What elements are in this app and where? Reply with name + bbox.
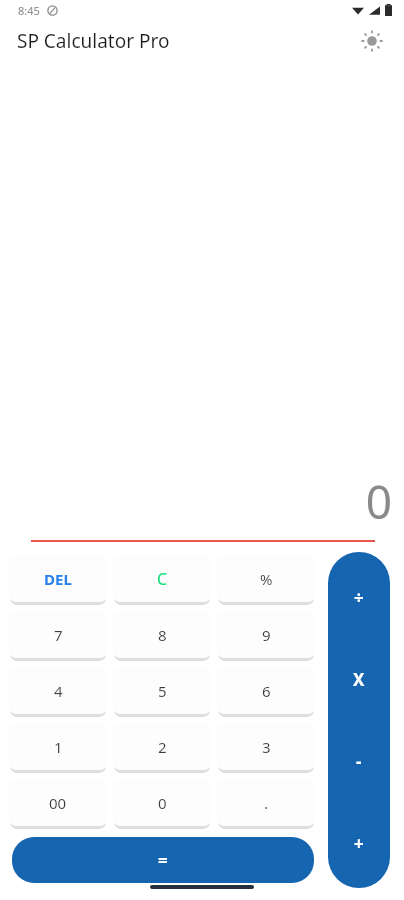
button[interactable]: Toggle theme [354,23,390,59]
button[interactable]: 6 [217,667,315,714]
staticText: 3 [262,737,271,757]
staticText: X [353,668,365,691]
button[interactable]: Multiply [328,642,390,716]
button[interactable]: 9 [217,611,315,658]
staticText: ÷ [354,586,364,609]
button[interactable]: 7 [9,611,107,658]
button[interactable]: C [113,555,211,602]
button[interactable]: Subtract [328,724,390,798]
button[interactable]: 1 [9,723,107,770]
button[interactable]: = [12,837,314,883]
button[interactable]: 8 [113,611,211,658]
button[interactable]: % [217,555,315,602]
button[interactable]: 0 [113,779,211,826]
staticText: DEL [44,569,72,589]
staticText: 0 [365,470,392,532]
staticText: 6 [262,681,271,701]
staticText: 8:45 [18,3,40,18]
staticText: 7 [54,625,63,645]
staticText: 8 [158,625,167,645]
staticText: 0 [158,793,167,813]
staticText: 00 [49,793,67,813]
button[interactable]: Add [328,806,390,880]
staticText: C [157,568,168,590]
staticText: 2 [158,737,167,757]
staticText: SP Calculator Pro [17,28,170,54]
staticText: 9 [262,625,271,645]
button[interactable]: DEL [9,555,107,602]
button[interactable]: . [217,779,315,826]
staticText: 4 [54,681,63,701]
button[interactable]: 2 [113,723,211,770]
staticText: + [354,832,364,855]
button[interactable]: 3 [217,723,315,770]
staticText: 1 [54,737,63,757]
button[interactable]: 4 [9,667,107,714]
button[interactable]: Divide [328,560,390,634]
button[interactable]: 00 [9,779,107,826]
staticText: . [264,793,269,813]
staticText: % [260,569,273,589]
staticText: 5 [158,681,167,701]
staticText: = [158,849,168,872]
staticText: - [356,750,362,773]
button[interactable]: 5 [113,667,211,714]
